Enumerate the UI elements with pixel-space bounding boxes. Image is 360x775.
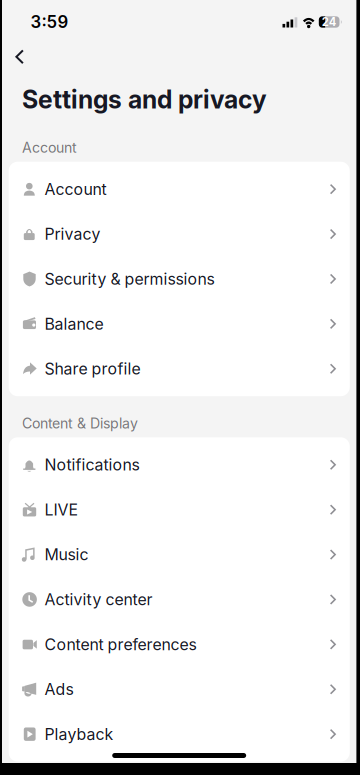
button[interactable]: Account bbox=[9, 167, 350, 212]
staticText: Content & Display bbox=[22, 415, 138, 432]
staticText: Balance bbox=[44, 314, 103, 333]
button[interactable]: Notifications bbox=[9, 442, 350, 487]
staticText: Privacy bbox=[44, 224, 100, 244]
staticText: Account bbox=[44, 180, 106, 199]
staticText: Account bbox=[22, 139, 77, 156]
staticText: Settings and privacy bbox=[22, 85, 267, 115]
staticText: Notifications bbox=[44, 455, 139, 474]
button[interactable]: Balance bbox=[9, 301, 350, 346]
button[interactable]: Music bbox=[9, 532, 350, 577]
button[interactable]: Back bbox=[2, 44, 36, 70]
staticText: Security & permissions bbox=[44, 269, 214, 289]
button[interactable]: Activity center bbox=[9, 577, 350, 622]
button[interactable]: Security & permissions bbox=[9, 256, 350, 301]
staticText: Activity center bbox=[44, 590, 152, 609]
button[interactable]: LIVE bbox=[9, 487, 350, 532]
staticText: 3:59 bbox=[31, 12, 69, 32]
staticText: 24 bbox=[322, 15, 337, 29]
button[interactable]: Content preferences bbox=[9, 622, 350, 667]
staticText: Share profile bbox=[44, 359, 140, 378]
button[interactable]: Playback bbox=[9, 712, 350, 757]
button[interactable]: Privacy bbox=[9, 212, 350, 256]
staticText: LIVE bbox=[44, 500, 78, 519]
staticText: Ads bbox=[44, 680, 73, 699]
button[interactable]: Ads bbox=[9, 667, 350, 712]
staticText: Content preferences bbox=[44, 635, 196, 654]
button[interactable]: Share profile bbox=[9, 346, 350, 391]
staticText: Playback bbox=[44, 725, 113, 744]
staticText: Music bbox=[44, 545, 88, 564]
